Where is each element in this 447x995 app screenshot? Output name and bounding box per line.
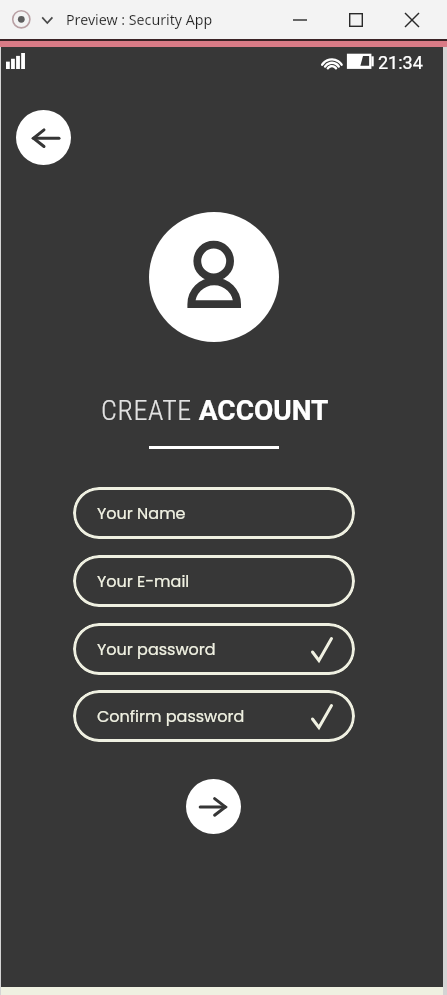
staticText: Your E-mail — [97, 570, 190, 592]
staticText: Your password — [97, 638, 216, 660]
staticText: 21:34 — [378, 52, 423, 73]
button[interactable]: Next — [186, 779, 241, 834]
button[interactable]: Back — [16, 110, 71, 165]
button[interactable]: Your Name — [73, 487, 355, 539]
button[interactable]: Minimize — [272, 0, 328, 39]
button[interactable]: Close — [384, 0, 440, 39]
staticText: Your Name — [97, 502, 186, 524]
button[interactable]: Your E-mail — [73, 555, 355, 607]
button[interactable]: Maximize — [328, 0, 384, 39]
button[interactable]: Your password — [73, 623, 355, 675]
staticText: CREATE ACCOUNT — [101, 394, 329, 427]
button[interactable]: Confirm password — [73, 690, 355, 742]
staticText: Preview : Security App — [66, 10, 213, 29]
staticText: Confirm password — [97, 705, 245, 727]
